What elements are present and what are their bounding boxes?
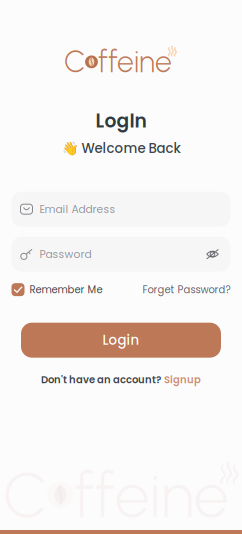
button[interactable]: Remember Me: [11, 283, 102, 297]
button[interactable]: Signup: [164, 373, 201, 387]
staticText: Welcome Back: [81, 139, 180, 158]
button[interactable]: Login: [21, 323, 221, 358]
staticText: ffeine: [98, 44, 172, 80]
button[interactable]: Forget Password?: [142, 283, 230, 297]
staticText: Email Address: [39, 202, 115, 217]
staticText: C: [64, 44, 85, 80]
staticText: Remember Me: [29, 283, 102, 297]
staticText: ffeine: [74, 457, 229, 532]
button[interactable]: Show password: [203, 247, 221, 262]
staticText: Login: [102, 331, 139, 349]
staticText: Forget Password?: [142, 283, 230, 297]
staticText: 👋: [61, 140, 78, 156]
staticText: Don't have an account?: [41, 373, 161, 387]
staticText: Password: [39, 247, 91, 262]
staticText: Signup: [164, 373, 201, 387]
staticText: C: [3, 457, 47, 532]
staticText: LogIn: [95, 108, 146, 134]
